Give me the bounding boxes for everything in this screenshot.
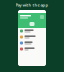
staticText: Pay with the app: [15, 2, 48, 8]
button[interactable]: [18, 40, 46, 46]
button[interactable]: [18, 28, 46, 34]
button[interactable]: [18, 46, 46, 52]
button[interactable]: [18, 34, 46, 40]
